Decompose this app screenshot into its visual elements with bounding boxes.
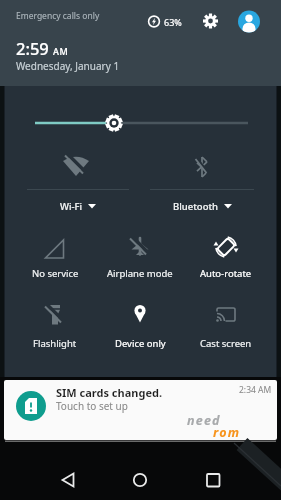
button[interactable] — [48, 464, 88, 496]
staticText: Wi-Fi — [60, 200, 83, 213]
button[interactable] — [186, 225, 266, 285]
button[interactable] — [17, 145, 145, 215]
staticText: Device only — [115, 337, 166, 350]
staticText: Emergency calls only — [16, 10, 100, 22]
staticText: Wednesday, January 1 — [16, 59, 120, 73]
staticText: Auto-rotate — [200, 267, 252, 280]
staticText: 63% — [164, 16, 182, 28]
staticText: Flashlight — [33, 337, 77, 350]
staticText: rom — [213, 424, 241, 441]
staticText: 2:34 AM — [239, 384, 272, 396]
button[interactable] — [0, 0, 281, 86]
staticText: SIM cards changed. — [56, 385, 162, 400]
staticText: No service — [32, 267, 79, 280]
button[interactable] — [148, 145, 260, 215]
button[interactable] — [15, 293, 95, 353]
staticText: 2:59 — [16, 37, 49, 59]
button[interactable] — [196, 6, 226, 36]
staticText: Airplane mode — [107, 267, 173, 280]
staticText: AM — [53, 45, 69, 57]
button[interactable] — [30, 108, 255, 138]
staticText: Bluetooth — [173, 200, 219, 213]
staticText: Cast screen — [200, 337, 252, 350]
staticText: Touch to set up — [56, 399, 128, 413]
button[interactable] — [186, 293, 266, 353]
button[interactable] — [236, 8, 263, 35]
button[interactable] — [100, 225, 180, 285]
button[interactable] — [193, 464, 233, 496]
button[interactable] — [120, 464, 160, 496]
button[interactable] — [4, 380, 277, 440]
staticText: need — [187, 412, 221, 429]
button[interactable] — [100, 293, 180, 353]
button[interactable] — [15, 225, 95, 285]
